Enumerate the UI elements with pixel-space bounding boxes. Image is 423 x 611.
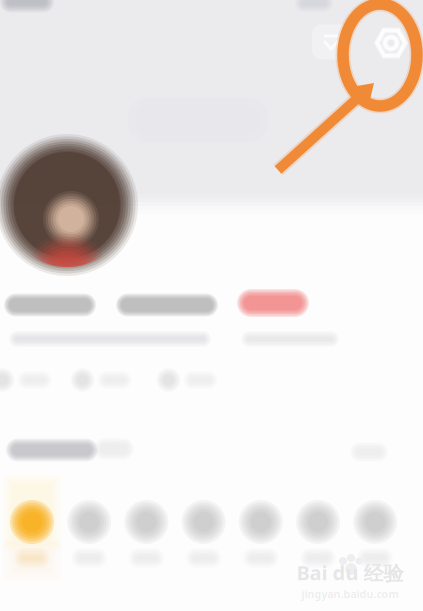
staticText: Bai du 经验 [296, 559, 403, 586]
button[interactable]: More [350, 437, 388, 467]
button[interactable]: Shortcut 2 [61, 486, 118, 594]
button[interactable]: Shortcut 4 [175, 486, 232, 594]
button[interactable]: Settings [369, 21, 413, 65]
button[interactable]: Followers [70, 365, 131, 395]
button[interactable]: Shortcut 6 [289, 486, 346, 594]
button[interactable]: Shortcut 5 [232, 486, 289, 594]
button[interactable]: Shortcut 1 [3, 486, 60, 594]
button[interactable]: Likes [156, 365, 217, 395]
button[interactable]: Downloads [309, 20, 353, 64]
button[interactable]: Shortcut 7 [347, 486, 404, 594]
button[interactable]: Shortcut 3 [118, 486, 175, 594]
staticText: jingyan.baidu.com [301, 587, 398, 601]
button[interactable]: Following [0, 365, 51, 395]
